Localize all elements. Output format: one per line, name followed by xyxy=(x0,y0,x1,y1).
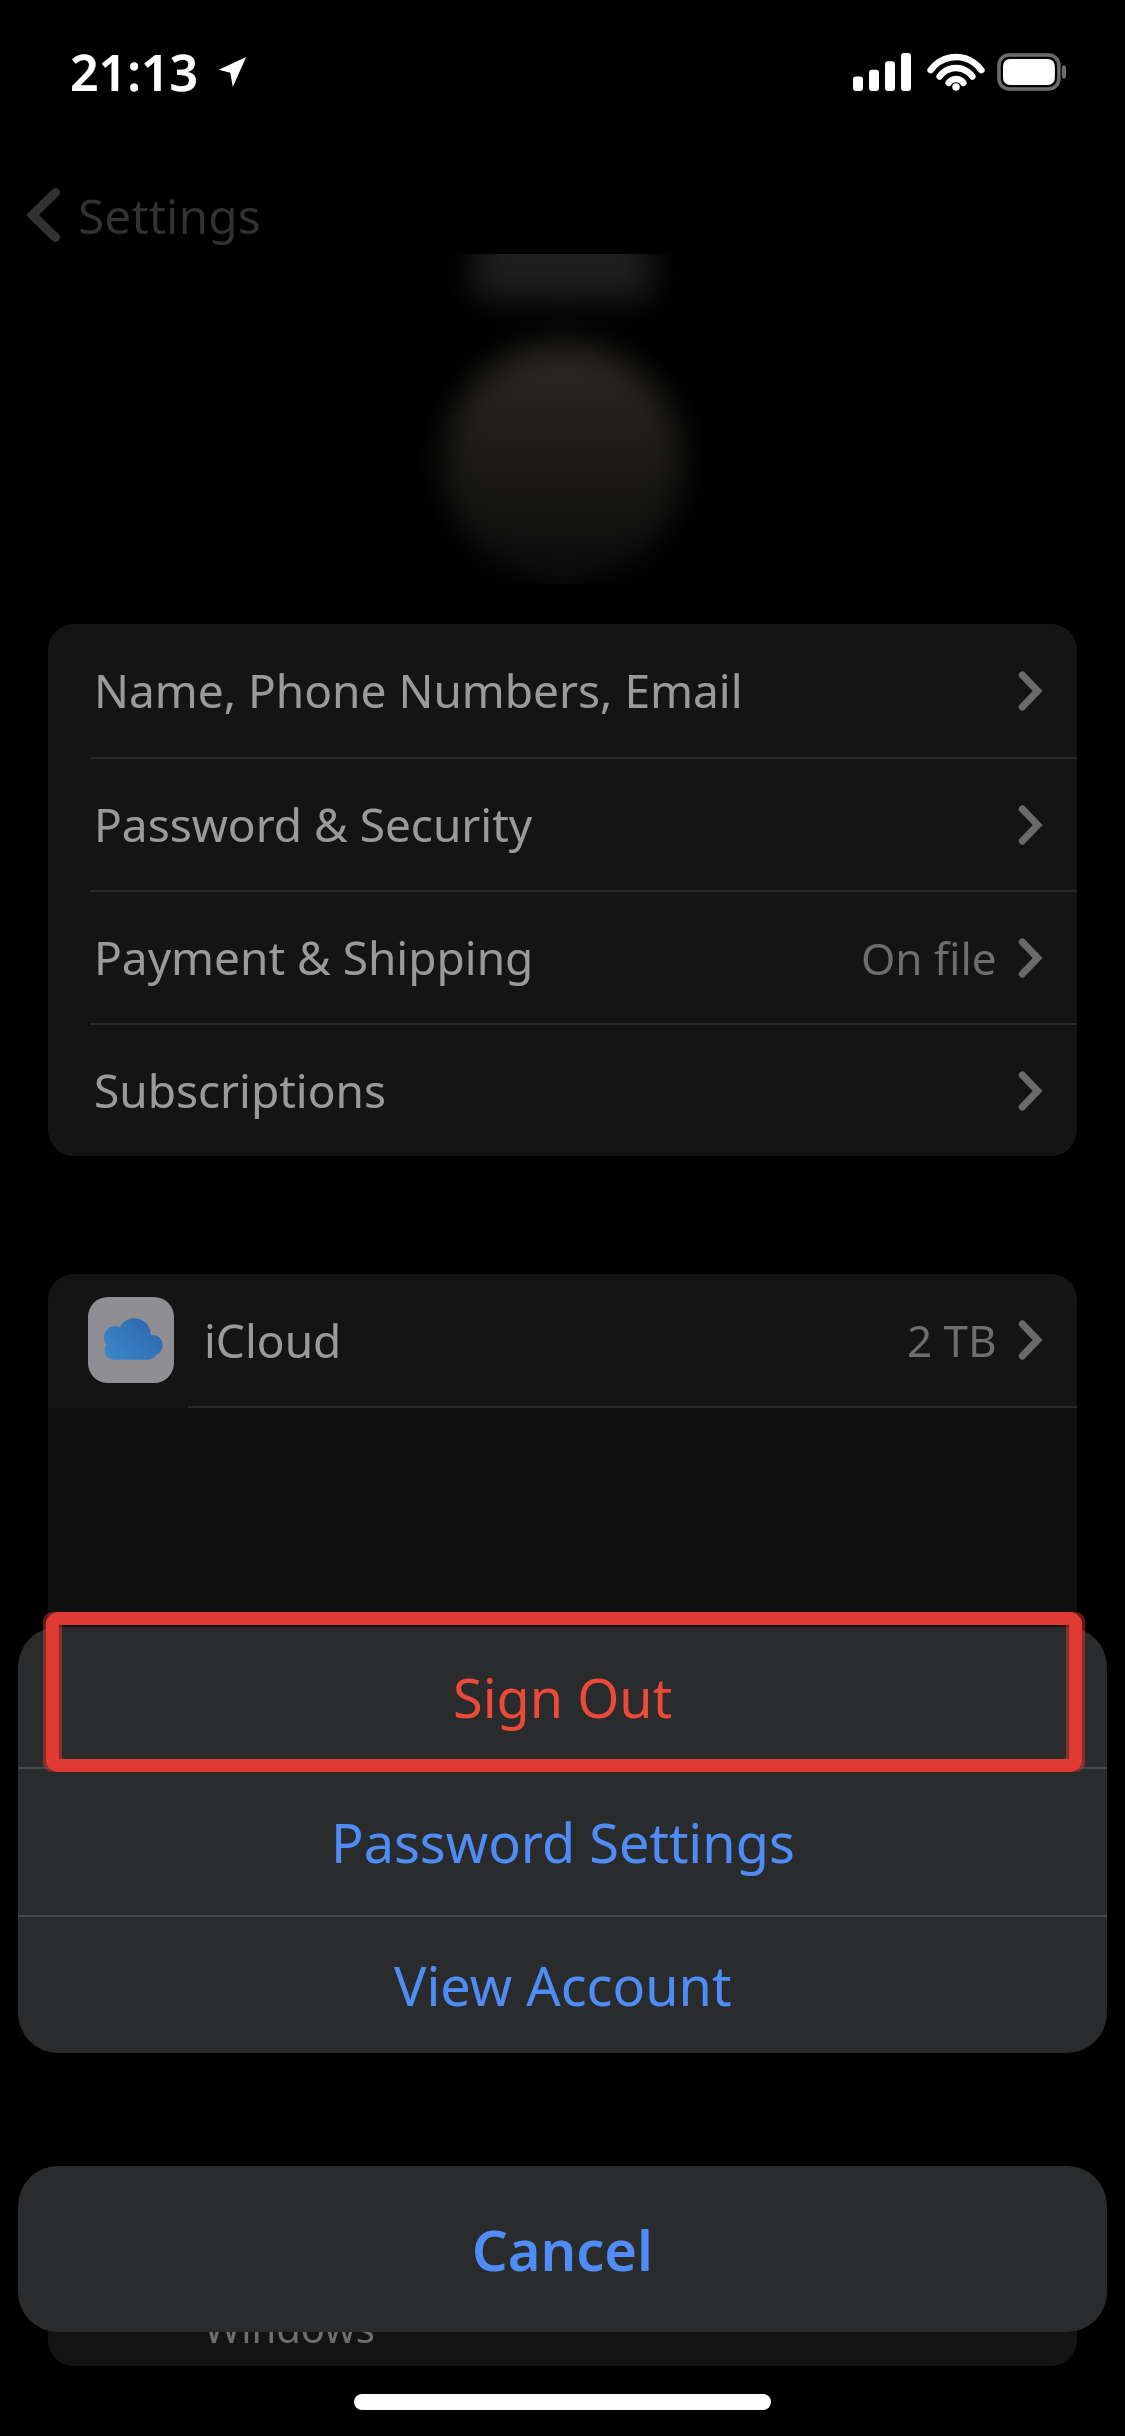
button[interactable]: Password Settings xyxy=(18,1769,1107,1915)
staticText: Cancel xyxy=(472,2211,653,2287)
staticText: On file xyxy=(861,928,997,988)
staticText: Password & Security xyxy=(94,793,533,856)
button[interactable]: View Account xyxy=(18,1917,1107,2053)
staticText: DESKTOP-1G4B9B xyxy=(204,2229,593,2292)
button[interactable]: DESKTOP-1G4B9B xyxy=(48,2216,1077,2366)
staticText: Sign Out xyxy=(453,1660,673,1734)
staticText: Payment & Shipping xyxy=(94,926,534,989)
button[interactable]: iCloud xyxy=(48,1274,1077,1406)
staticText: Settings xyxy=(78,183,261,248)
staticText: View Account xyxy=(394,1948,732,2022)
button[interactable]: Subscriptions xyxy=(48,1023,1077,1156)
button[interactable]: Settings xyxy=(0,176,1125,254)
staticText: iCloud xyxy=(204,1309,342,1372)
button[interactable]: Sign Out xyxy=(18,1627,1107,1767)
staticText: Subscriptions xyxy=(94,1059,387,1122)
button[interactable]: Cancel xyxy=(18,2166,1107,2332)
staticText: Name, Phone Numbers, Email xyxy=(94,659,743,722)
staticText: Password Settings xyxy=(331,1805,795,1879)
staticText: Windows xyxy=(204,2300,375,2354)
button[interactable]: Password & Security xyxy=(48,757,1077,890)
button[interactable]: Name, Phone Numbers, Email xyxy=(48,624,1077,757)
button[interactable]: Payment & Shipping xyxy=(48,890,1077,1023)
staticText: 21:13 xyxy=(70,38,199,106)
staticText: 2 TB xyxy=(907,1310,997,1370)
